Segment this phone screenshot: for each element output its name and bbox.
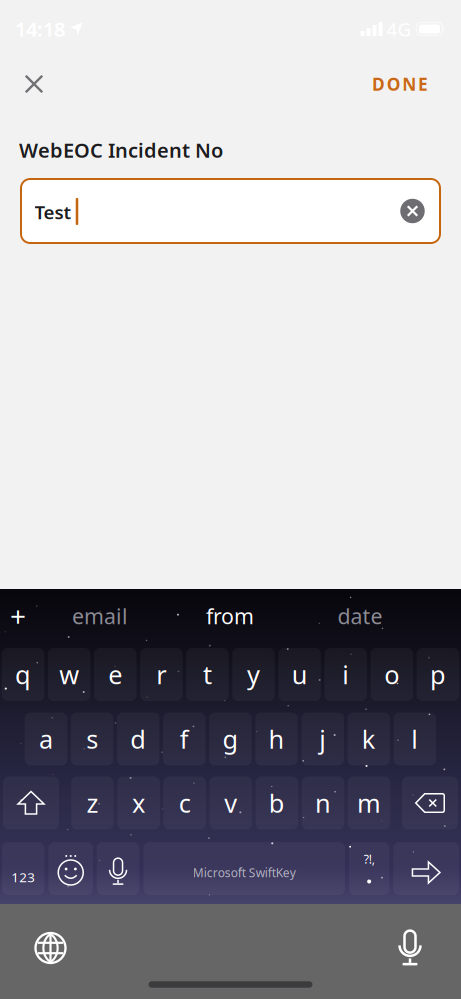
- staticText: from: [206, 602, 254, 630]
- staticText: b: [269, 786, 285, 820]
- staticText: e: [108, 658, 122, 691]
- button[interactable]: Emoji: [48, 842, 93, 895]
- staticText: u: [292, 658, 308, 691]
- button[interactable]: h: [255, 712, 298, 765]
- button[interactable]: Numbers: [2, 842, 44, 895]
- staticText: r: [156, 658, 166, 691]
- staticText: c: [179, 786, 191, 820]
- staticText: 14:18: [15, 16, 65, 42]
- button[interactable]: u: [278, 648, 321, 701]
- button[interactable]: Close: [12, 62, 56, 106]
- staticText: 123: [11, 868, 35, 886]
- button[interactable]: a: [25, 712, 67, 765]
- staticText: z: [86, 786, 98, 820]
- staticText: 4G: [386, 17, 411, 41]
- button[interactable]: v: [209, 776, 252, 829]
- staticText: O: [387, 72, 401, 95]
- staticText: Microsoft SwiftKey: [193, 864, 296, 880]
- staticText: a: [39, 722, 53, 756]
- staticText: WebEOC Incident No: [19, 137, 223, 163]
- button[interactable]: Delete: [402, 776, 458, 829]
- button[interactable]: k: [347, 712, 390, 765]
- staticText: f: [180, 722, 189, 756]
- button[interactable]: Return: [393, 842, 459, 895]
- staticText: d: [130, 722, 146, 756]
- staticText: x: [132, 786, 145, 820]
- button[interactable]: s: [71, 712, 113, 765]
- button[interactable]: Dictation: [380, 918, 440, 978]
- staticText: ?!,: [364, 851, 375, 867]
- staticText: o: [384, 658, 399, 691]
- staticText: j: [319, 722, 326, 756]
- button[interactable]: c: [163, 776, 206, 829]
- button[interactable]: b: [256, 776, 298, 829]
- staticText: v: [224, 786, 237, 820]
- button[interactable]: l: [394, 712, 436, 765]
- staticText: E: [418, 72, 428, 95]
- staticText: Test: [34, 200, 71, 224]
- button[interactable]: q: [2, 648, 44, 701]
- button[interactable]: z: [71, 776, 114, 829]
- staticText: y: [247, 658, 260, 691]
- staticText: n: [315, 786, 331, 820]
- staticText: D: [372, 72, 385, 95]
- staticText: h: [269, 722, 285, 756]
- button[interactable]: w: [48, 648, 90, 701]
- staticText: +: [10, 597, 26, 635]
- button[interactable]: Expand predictions: [0, 594, 36, 638]
- button[interactable]: f: [163, 712, 206, 765]
- staticText: email: [72, 602, 128, 630]
- button[interactable]: from: [175, 594, 285, 638]
- staticText: l: [411, 722, 418, 756]
- staticText: q: [15, 658, 31, 691]
- staticText: t: [203, 658, 212, 691]
- staticText: w: [59, 658, 79, 691]
- button[interactable]: t: [186, 648, 229, 701]
- button[interactable]: n: [302, 776, 344, 829]
- staticText: k: [362, 722, 376, 756]
- button[interactable]: o: [371, 648, 413, 701]
- button[interactable]: Space: [143, 842, 345, 895]
- button[interactable]: e: [94, 648, 136, 701]
- staticText: p: [430, 658, 446, 691]
- button[interactable]: x: [117, 776, 160, 829]
- button[interactable]: Shift: [3, 776, 59, 829]
- button[interactable]: m: [348, 776, 390, 829]
- button[interactable]: y: [232, 648, 275, 701]
- button[interactable]: i: [324, 648, 367, 701]
- staticText: g: [222, 722, 238, 756]
- button[interactable]: email: [45, 594, 155, 638]
- staticText: m: [357, 786, 381, 820]
- staticText: i: [342, 658, 349, 691]
- staticText: date: [337, 602, 382, 630]
- button[interactable]: j: [301, 712, 344, 765]
- button[interactable]: date: [305, 594, 415, 638]
- button[interactable]: r: [140, 648, 183, 701]
- staticText: N: [402, 72, 416, 95]
- staticText: s: [86, 722, 98, 756]
- button[interactable]: Voice input: [97, 842, 139, 895]
- button[interactable]: Clear text: [392, 191, 432, 231]
- button[interactable]: Punctuation: [349, 842, 389, 895]
- button[interactable]: d: [117, 712, 159, 765]
- button[interactable]: p: [417, 648, 459, 701]
- button[interactable]: g: [209, 712, 252, 765]
- button[interactable]: D: [357, 62, 443, 106]
- button[interactable]: Next keyboard: [20, 918, 80, 978]
